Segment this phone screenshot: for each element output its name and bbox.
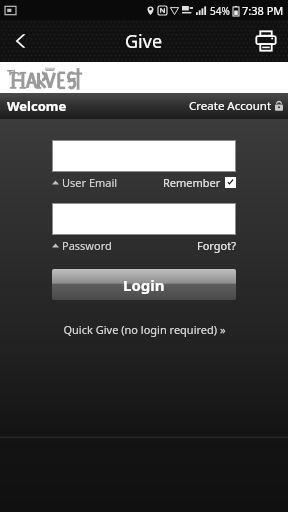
staticText: Login [123, 275, 165, 295]
button[interactable]: Remember [163, 175, 236, 190]
button[interactable]: Print [244, 20, 288, 62]
staticText: Remember [163, 175, 221, 190]
staticText: 7:38 PM [242, 3, 284, 18]
staticText: User Email [62, 175, 118, 190]
staticText: Give [125, 29, 163, 54]
staticText: Password [62, 238, 112, 253]
staticText: 54% [210, 4, 230, 18]
button[interactable]: Back [0, 20, 44, 62]
staticText: Create Account [189, 98, 272, 114]
staticText: Welcome [7, 97, 67, 115]
staticText: Forgot? [197, 238, 236, 253]
button[interactable]: Quick Give (no login required) » [0, 322, 288, 337]
button[interactable]: Create Account [189, 98, 283, 114]
staticText: Quick Give (no login required) » [63, 322, 226, 337]
button[interactable]: Forgot? [197, 238, 236, 253]
button[interactable]: Login [52, 269, 236, 300]
